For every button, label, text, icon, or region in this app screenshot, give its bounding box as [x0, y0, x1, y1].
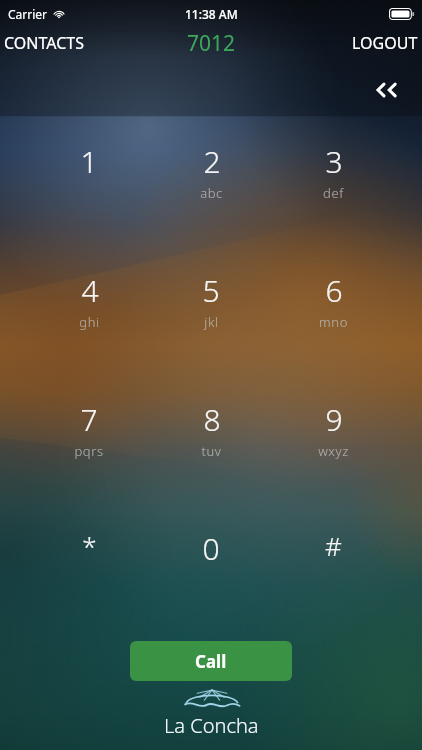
button[interactable]: 5 — [150, 248, 272, 377]
staticText: 6 — [325, 270, 343, 311]
staticText: jkl — [204, 313, 219, 331]
staticText: # — [325, 528, 342, 563]
button[interactable]: 4 — [28, 248, 150, 377]
button[interactable]: 0 — [150, 506, 272, 635]
staticText: 8 — [203, 399, 221, 440]
staticText: 11:38 AM — [185, 6, 238, 22]
button[interactable]: 8 — [150, 377, 272, 506]
button[interactable]: 2 — [150, 119, 272, 248]
staticText: 3 — [325, 141, 343, 182]
staticText: 7 — [80, 399, 98, 440]
button[interactable]: 7 — [28, 377, 150, 506]
staticText: mno — [319, 313, 348, 331]
staticText: 7012 — [187, 29, 236, 58]
staticText: La Concha — [164, 712, 259, 739]
button[interactable]: LOGOUT — [344, 28, 422, 58]
button[interactable]: Call — [130, 641, 292, 681]
button[interactable]: 3 — [272, 119, 394, 248]
staticText: pqrs — [74, 442, 104, 460]
button[interactable]: 9 — [272, 377, 394, 506]
staticText: * — [82, 528, 97, 563]
staticText: CONTACTS — [4, 32, 84, 54]
staticText: 9 — [325, 399, 343, 440]
staticText: LOGOUT — [352, 32, 418, 54]
staticText: Call — [195, 650, 227, 673]
staticText: Carrier — [8, 6, 48, 22]
button[interactable]: CONTACTS — [0, 28, 92, 58]
button[interactable]: 6 — [272, 248, 394, 377]
button[interactable]: 1 — [28, 119, 150, 248]
staticText: wxyz — [318, 442, 349, 460]
button[interactable]: Delete — [354, 68, 414, 112]
staticText: 0 — [202, 528, 220, 569]
staticText: 5 — [202, 270, 220, 311]
staticText: tuv — [201, 442, 222, 460]
staticText: 4 — [81, 270, 99, 311]
staticText: def — [323, 184, 344, 202]
staticText: ghi — [79, 313, 100, 331]
button[interactable]: # — [272, 506, 394, 635]
staticText: 2 — [203, 141, 221, 182]
button[interactable]: * — [28, 506, 150, 635]
staticText: abc — [200, 184, 223, 202]
staticText: 1 — [80, 141, 98, 182]
